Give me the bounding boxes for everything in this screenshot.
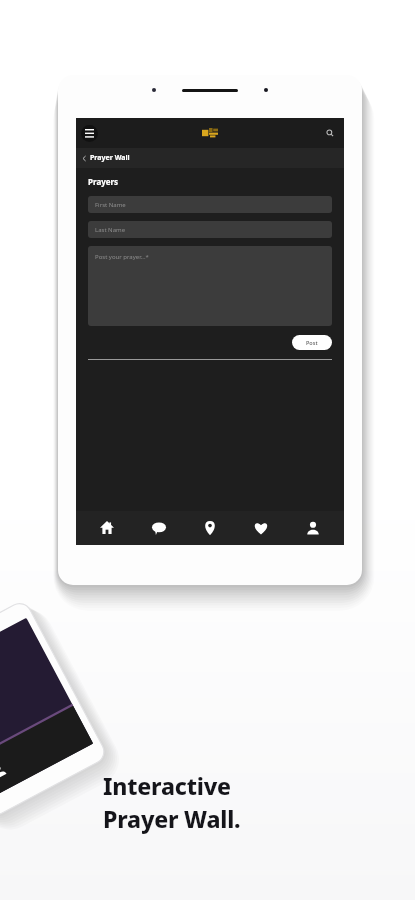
staticText: Prayer Wall	[90, 153, 130, 163]
button[interactable]: Prayer Wall	[76, 148, 344, 168]
staticText: Post your prayer...*	[95, 253, 149, 261]
staticText: First Name	[95, 201, 126, 209]
button[interactable]: Profile	[293, 511, 333, 545]
button[interactable]: Menu	[81, 125, 98, 142]
button[interactable]: Post	[292, 335, 332, 350]
button[interactable]: Locations	[190, 511, 230, 545]
staticText: Interactive	[103, 770, 231, 801]
staticText: Post	[306, 339, 318, 346]
button[interactable]: Home	[87, 511, 127, 545]
staticText: Prayer Wall.	[103, 803, 241, 834]
staticText: Last Name	[95, 226, 126, 234]
button[interactable]: Messages	[139, 511, 179, 545]
button[interactable]: Last Name	[88, 221, 332, 238]
button[interactable]: Search	[322, 125, 338, 141]
button[interactable]: First Name	[88, 196, 332, 213]
button[interactable]: Favorites	[241, 511, 281, 545]
staticText: Prayers	[88, 176, 119, 187]
